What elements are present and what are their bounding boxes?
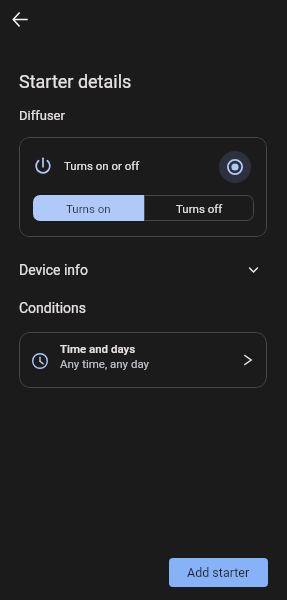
button[interactable]: Add starter (169, 558, 268, 587)
button[interactable]: Turns on (33, 195, 144, 221)
button[interactable]: Time and days (19, 332, 267, 388)
staticText: Turns off (176, 202, 223, 215)
button[interactable]: Device info (0, 253, 287, 287)
staticText: Turns on or off (64, 159, 140, 172)
button[interactable]: Turns off (144, 195, 254, 221)
staticText: Add starter (187, 565, 250, 580)
staticText: Starter details (19, 71, 132, 92)
button[interactable]: Selected (219, 151, 251, 183)
staticText: Time and days (60, 342, 136, 355)
staticText: Diffuser (19, 108, 65, 123)
button[interactable]: Back (4, 3, 36, 35)
staticText: Device info (19, 262, 88, 278)
staticText: Turns on (66, 202, 111, 215)
staticText: Any time, any day (60, 357, 150, 370)
staticText: Conditions (19, 300, 87, 316)
